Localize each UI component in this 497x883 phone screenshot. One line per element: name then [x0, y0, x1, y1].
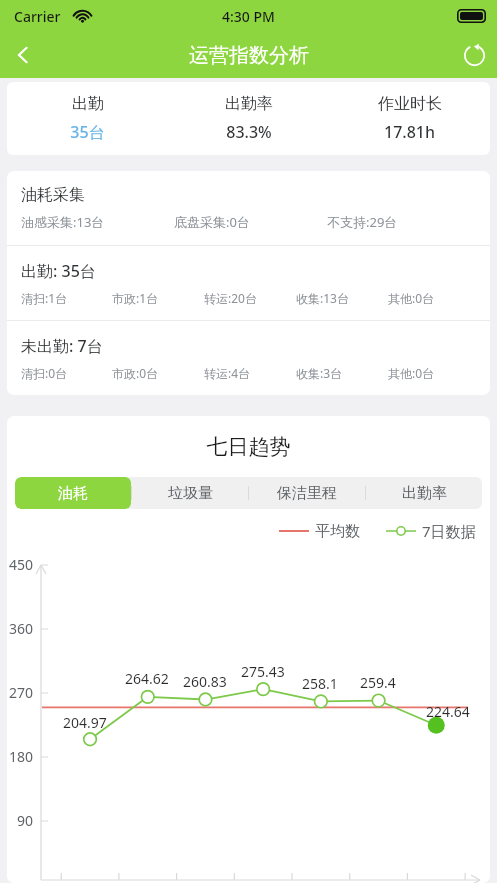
staticText: 90 — [17, 811, 34, 830]
button[interactable]: Refresh — [451, 32, 497, 78]
staticText: 270 — [9, 683, 34, 702]
staticText: 其他:0台 — [388, 365, 480, 381]
staticText: 260.83 — [183, 672, 227, 691]
staticText: 转运:20台 — [204, 290, 296, 306]
button[interactable]: 出勤率 — [366, 477, 482, 509]
staticText: 市政:0台 — [112, 365, 204, 381]
staticText: 运营指数分析 — [189, 43, 309, 68]
staticText: 收集:13台 — [296, 290, 388, 306]
staticText: 259.4 — [360, 673, 396, 692]
staticText: 保洁里程 — [277, 484, 337, 503]
staticText: 258.1 — [302, 674, 338, 693]
staticText: 83.3% — [226, 121, 272, 143]
staticText: 油耗采集 — [21, 185, 85, 205]
button[interactable]: 出勤: 35台 — [7, 246, 490, 320]
button[interactable]: 油耗 — [15, 477, 131, 509]
staticText: 转运:4台 — [204, 365, 296, 381]
staticText: 未出勤: 7台 — [21, 335, 103, 357]
button[interactable]: Back — [0, 32, 46, 78]
staticText: 底盘采集:0台 — [174, 213, 327, 231]
staticText: 450 — [9, 555, 34, 574]
staticText: 七日趋势 — [7, 434, 490, 460]
staticText: 出勤 — [72, 94, 104, 114]
button[interactable]: 垃圾量 — [132, 477, 248, 509]
button[interactable]: 出勤 — [7, 82, 490, 155]
staticText: 264.62 — [125, 669, 169, 688]
staticText: 作业时长 — [378, 94, 442, 114]
staticText: 204.97 — [63, 713, 107, 732]
staticText: 出勤: 35台 — [21, 260, 96, 282]
staticText: 224.64 — [426, 702, 470, 721]
staticText: 275.43 — [241, 662, 285, 681]
button[interactable]: 油耗采集 — [7, 171, 490, 245]
staticText: 4:30 PM — [222, 7, 275, 26]
staticText: 出勤率 — [225, 94, 273, 114]
staticText: 17.81h — [384, 121, 435, 143]
staticText: 垃圾量 — [168, 484, 213, 503]
staticText: 360 — [9, 619, 34, 638]
staticText: 油耗 — [58, 484, 88, 503]
staticText: 清扫:0台 — [21, 365, 112, 381]
staticText: 油感采集:13台 — [21, 213, 174, 231]
staticText: 清扫:1台 — [21, 290, 112, 306]
staticText: 平均数 — [315, 522, 360, 541]
staticText: 市政:1台 — [112, 290, 204, 306]
staticText: 35台 — [70, 121, 105, 143]
staticText: 收集:3台 — [296, 365, 388, 381]
button[interactable]: 保洁里程 — [249, 477, 365, 509]
staticText: Carrier — [14, 7, 61, 26]
staticText: 出勤率 — [402, 484, 447, 503]
staticText: 其他:0台 — [388, 290, 480, 306]
staticText: 不支持:29台 — [327, 213, 480, 231]
staticText: 180 — [9, 747, 34, 766]
staticText: 7日数据 — [422, 521, 476, 541]
button[interactable]: 未出勤: 7台 — [7, 321, 490, 395]
